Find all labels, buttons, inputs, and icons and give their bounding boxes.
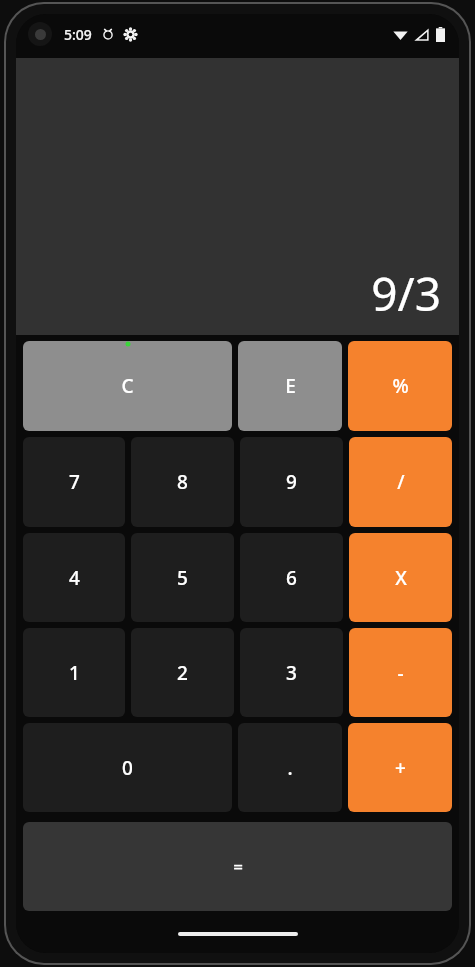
button[interactable]: . <box>238 723 342 812</box>
button[interactable]: = <box>23 822 452 911</box>
staticText: C <box>121 373 134 399</box>
staticText: 7 <box>69 469 80 495</box>
button[interactable]: - <box>349 628 452 717</box>
button[interactable]: 9 <box>240 437 343 527</box>
staticText: + <box>395 755 406 781</box>
button[interactable]: + <box>348 723 452 812</box>
button[interactable]: 2 <box>131 628 234 717</box>
staticText: = <box>233 855 243 878</box>
staticText: 9/3 <box>371 262 441 325</box>
staticText: 0 <box>122 755 133 781</box>
button[interactable]: 0 <box>23 723 232 812</box>
button[interactable]: / <box>349 437 452 527</box>
staticText: % <box>392 373 409 399</box>
staticText: 5 <box>177 565 188 591</box>
staticText: 4 <box>69 565 80 591</box>
button[interactable]: 5 <box>131 533 234 622</box>
staticText: 9 <box>286 469 297 495</box>
button[interactable]: 3 <box>240 628 343 717</box>
staticText: / <box>397 469 405 495</box>
staticText: - <box>397 660 404 686</box>
staticText: 5:09 <box>64 25 92 44</box>
button[interactable]: 4 <box>23 533 125 622</box>
button[interactable]: X <box>349 533 452 622</box>
staticText: 2 <box>177 660 188 686</box>
staticText: X <box>395 565 407 591</box>
button[interactable]: 6 <box>240 533 343 622</box>
staticText: 1 <box>69 660 80 686</box>
staticText: 3 <box>286 660 297 686</box>
staticText: 6 <box>286 565 297 591</box>
button[interactable]: C <box>23 341 232 431</box>
button[interactable]: 8 <box>131 437 234 527</box>
staticText: . <box>287 755 293 781</box>
staticText: 8 <box>177 469 188 495</box>
button[interactable]: 7 <box>23 437 125 527</box>
button[interactable]: 1 <box>23 628 125 717</box>
button[interactable]: % <box>348 341 452 431</box>
button[interactable]: E <box>238 341 342 431</box>
staticText: E <box>285 373 296 399</box>
